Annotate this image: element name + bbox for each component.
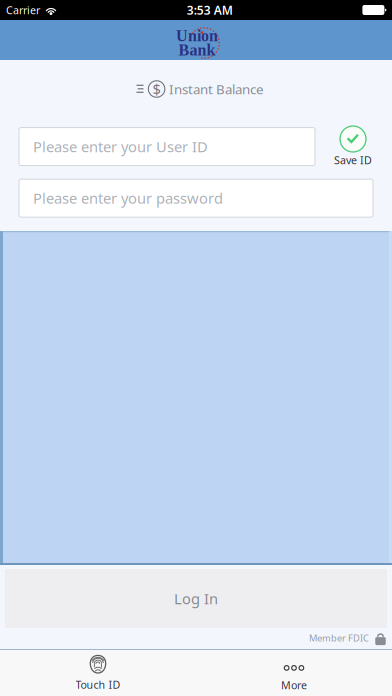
button[interactable]: Please enter your User ID: [19, 128, 315, 166]
staticText: Log In: [174, 589, 218, 608]
staticText: Save ID: [334, 153, 372, 167]
button[interactable]: Please enter your password: [19, 179, 373, 217]
button[interactable]: More: [196, 649, 392, 696]
staticText: Union: [176, 27, 218, 45]
staticText: More: [281, 678, 307, 692]
staticText: Bank: [178, 41, 215, 59]
staticText: Touch ID: [75, 677, 120, 692]
staticText: Carrier: [6, 3, 40, 17]
staticText: Please enter your password: [33, 188, 223, 208]
button[interactable]: $: [135, 79, 257, 99]
staticText: Instant Balance: [169, 80, 264, 98]
button[interactable]: Touch ID: [0, 649, 196, 696]
button[interactable]: Log In: [5, 569, 387, 628]
staticText: Member FDIC: [309, 632, 369, 644]
staticText: 3:53 AM: [187, 2, 233, 18]
button[interactable]: Save ID: [334, 126, 372, 167]
staticText: Please enter your User ID: [33, 137, 208, 156]
staticText: $: [153, 79, 161, 99]
